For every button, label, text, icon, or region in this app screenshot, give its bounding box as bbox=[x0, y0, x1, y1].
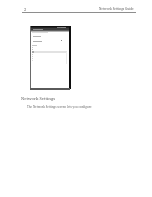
staticText: 2 bbox=[24, 7, 27, 12]
staticText: The Network Settings screen lets you con… bbox=[27, 105, 92, 109]
staticText: Network Settings Guide bbox=[99, 7, 134, 11]
staticText: Network Settings bbox=[21, 96, 56, 102]
